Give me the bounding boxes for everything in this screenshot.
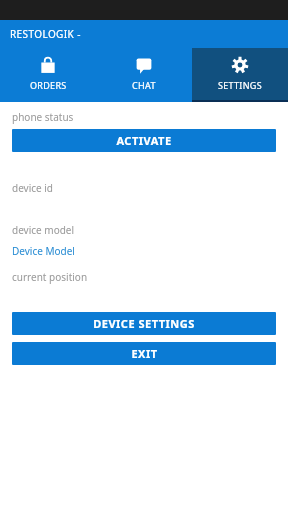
staticText: CHAT — [132, 79, 156, 91]
staticText: device model — [12, 223, 75, 237]
button[interactable]: SETTINGS — [192, 48, 288, 102]
staticText: ACTIVATE — [116, 133, 172, 148]
staticText: phone status — [12, 110, 74, 124]
button[interactable]: EXIT — [12, 342, 276, 365]
staticText: Device Model — [12, 244, 75, 258]
staticText: RESTOLOGIK - — [10, 27, 81, 41]
staticText: DEVICE SETTINGS — [93, 316, 195, 331]
button[interactable]: DEVICE SETTINGS — [12, 312, 276, 335]
staticText: ORDERS — [30, 79, 67, 91]
staticText: SETTINGS — [218, 79, 262, 91]
button[interactable]: ACTIVATE — [12, 129, 276, 152]
staticText: EXIT — [131, 346, 158, 361]
button[interactable]: CHAT — [96, 48, 192, 102]
staticText: current position — [12, 270, 88, 284]
staticText: device id — [12, 181, 54, 195]
button[interactable]: ORDERS — [0, 48, 96, 102]
